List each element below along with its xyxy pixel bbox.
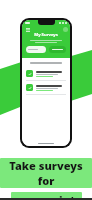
- button[interactable]: [49, 46, 66, 53]
- staticText: Take surveys for: [1, 158, 91, 188]
- button[interactable]: Menu: [25, 27, 30, 32]
- staticText: My Surveys: [34, 32, 58, 38]
- staticText: more points: [12, 192, 81, 200]
- button[interactable]: [26, 82, 66, 93]
- button[interactable]: [26, 46, 46, 53]
- button[interactable]: [26, 68, 66, 79]
- button[interactable]: Profile: [63, 27, 68, 32]
